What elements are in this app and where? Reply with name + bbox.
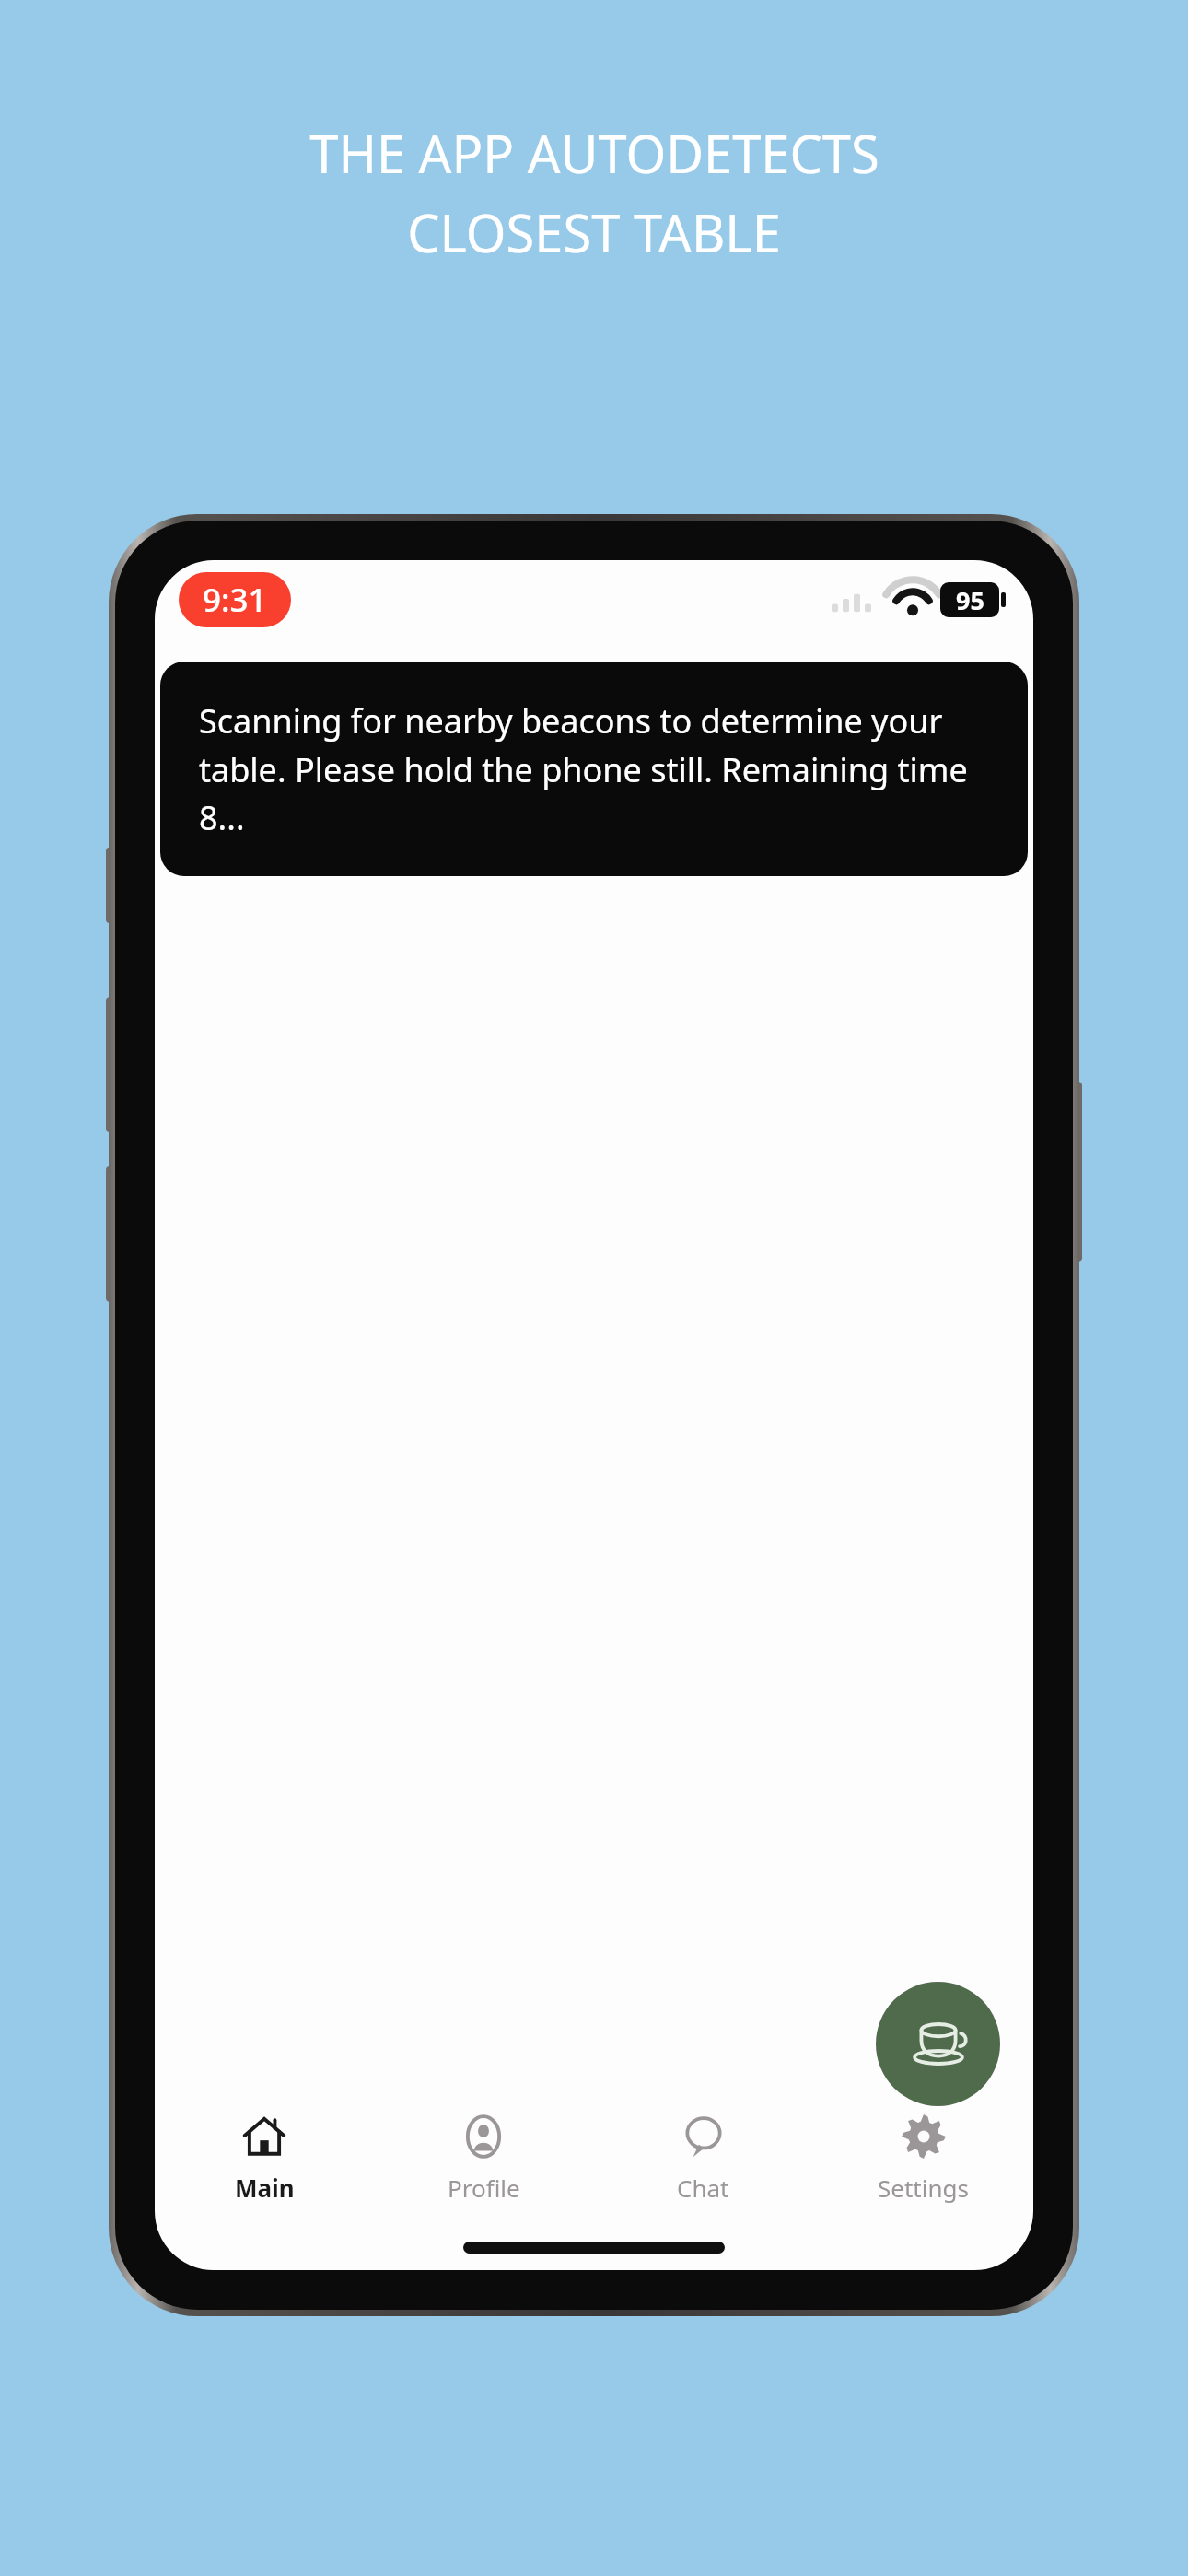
staticText: 95 <box>956 583 984 617</box>
button[interactable]: Chat <box>593 2106 813 2209</box>
staticText: Scanning for nearby beacons to determine… <box>199 698 989 839</box>
button[interactable]: Profile <box>374 2106 593 2209</box>
staticText: Settings <box>878 2172 969 2204</box>
button[interactable]: Scanning for nearby beacons to determine… <box>160 662 1028 876</box>
staticText: Chat <box>677 2172 729 2204</box>
button[interactable]: Settings <box>813 2106 1033 2209</box>
staticText: 9:31 <box>203 578 267 622</box>
staticText: Main <box>235 2172 295 2204</box>
staticText: Profile <box>448 2172 520 2204</box>
staticText: CLOSEST TABLE <box>407 197 781 267</box>
button[interactable]: Main <box>155 2106 374 2209</box>
button[interactable]: Order a drink <box>876 1982 1000 2106</box>
staticText: THE APP AUTODETECTS <box>309 118 879 188</box>
